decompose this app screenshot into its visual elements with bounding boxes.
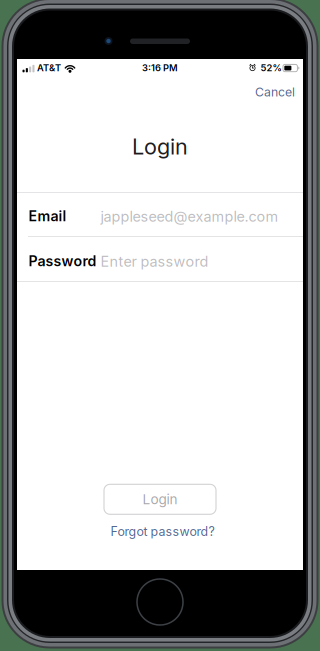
staticText: AT&T — [37, 62, 61, 73]
staticText: Cancel — [255, 85, 295, 99]
button[interactable]: Forgot password? — [97, 520, 227, 542]
staticText: jappleseed@example.com — [100, 208, 278, 225]
staticText: Login — [132, 133, 188, 160]
staticText: Forgot password? — [110, 524, 214, 539]
staticText: Email — [28, 207, 66, 224]
staticText: Password — [28, 252, 96, 269]
staticText: Enter password — [100, 253, 208, 270]
button[interactable]: Login — [104, 484, 216, 514]
staticText: 52% — [260, 62, 281, 74]
button[interactable]: Cancel — [233, 77, 295, 107]
staticText: Login — [142, 491, 177, 508]
staticText: 3:16 PM — [142, 62, 178, 73]
